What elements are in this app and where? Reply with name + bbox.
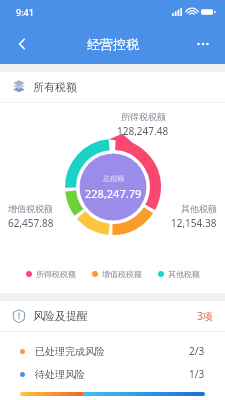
staticText: 9:41 [16,6,34,18]
staticText: 其他税额 [168,269,200,279]
staticText: 228,247.79 [85,186,142,201]
button[interactable]: Back [6,28,38,60]
staticText: 所得税税额 [36,269,76,279]
staticText: 已处理完成风险 [35,345,105,358]
staticText: 12,154.38 [171,216,217,230]
staticText: 待处理风险 [35,368,85,381]
staticText: 3项 [197,309,213,323]
staticText: 1/3 [189,367,205,381]
button[interactable]: 待处理风险 [20,367,205,381]
staticText: 风险及提醒 [33,309,88,323]
button[interactable]: 所有税额 [0,72,225,293]
staticText: 增值税税额 [102,269,142,279]
staticText: 128,247.48 [117,124,169,138]
staticText: 所有税额 [33,80,77,94]
staticText: 其他税额 [181,203,217,214]
staticText: 所得税税额 [121,111,166,122]
staticText: 总税额 [103,174,124,183]
staticText: 62,457.88 [8,216,54,230]
button[interactable]: 风险及提醒 [0,301,225,400]
button[interactable]: 已处理完成风险 [20,344,205,358]
staticText: 经营控税 [87,36,139,52]
staticText: 增值税税额 [8,203,53,214]
staticText: 2/3 [189,344,205,358]
button[interactable]: More options [187,28,219,60]
